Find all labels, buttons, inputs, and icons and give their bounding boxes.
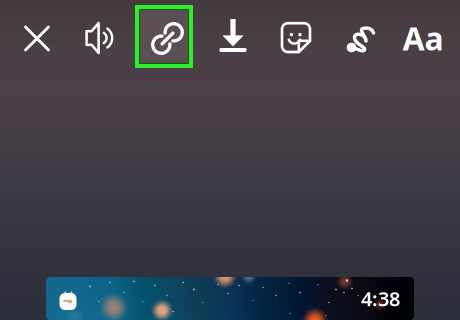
- button[interactable]: Sound on: [83, 20, 119, 56]
- button[interactable]: Snap preview, 4:38: [46, 277, 414, 320]
- button[interactable]: Save: [215, 18, 251, 54]
- button[interactable]: Draw: [343, 21, 379, 57]
- staticText: 4:38: [361, 285, 400, 312]
- staticText: Aa: [402, 17, 443, 59]
- button[interactable]: Add text: [402, 20, 444, 56]
- button[interactable]: Close: [19, 20, 55, 56]
- button[interactable]: Stickers: [278, 20, 314, 56]
- button[interactable]: Attach link: [135, 5, 193, 68]
